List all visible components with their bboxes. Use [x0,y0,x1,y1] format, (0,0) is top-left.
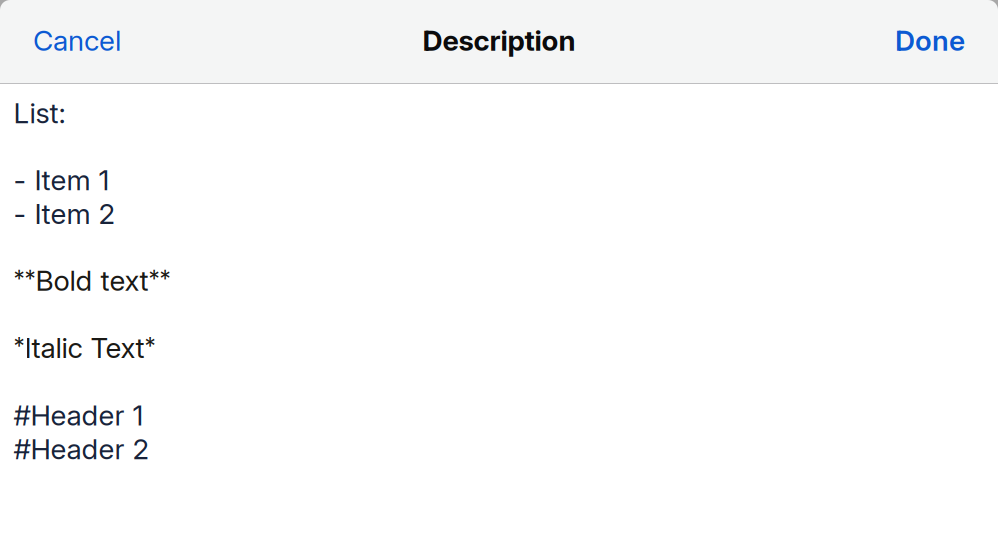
staticText: #Header 1 [13,398,143,432]
staticText: List: [13,96,65,130]
button[interactable]: Cancel [0,0,154,81]
button[interactable]: Description [0,0,998,534]
staticText: *Italic Text* [13,331,155,364]
staticText: Description [422,24,575,57]
staticText: - Item 2 [13,197,115,231]
staticText: Done [895,24,965,57]
button[interactable]: Done [862,0,998,81]
staticText: - Item 1 [13,163,109,197]
staticText: #Header 2 [13,432,149,466]
staticText: Cancel [33,24,121,57]
staticText: **Bold text** [13,264,170,297]
